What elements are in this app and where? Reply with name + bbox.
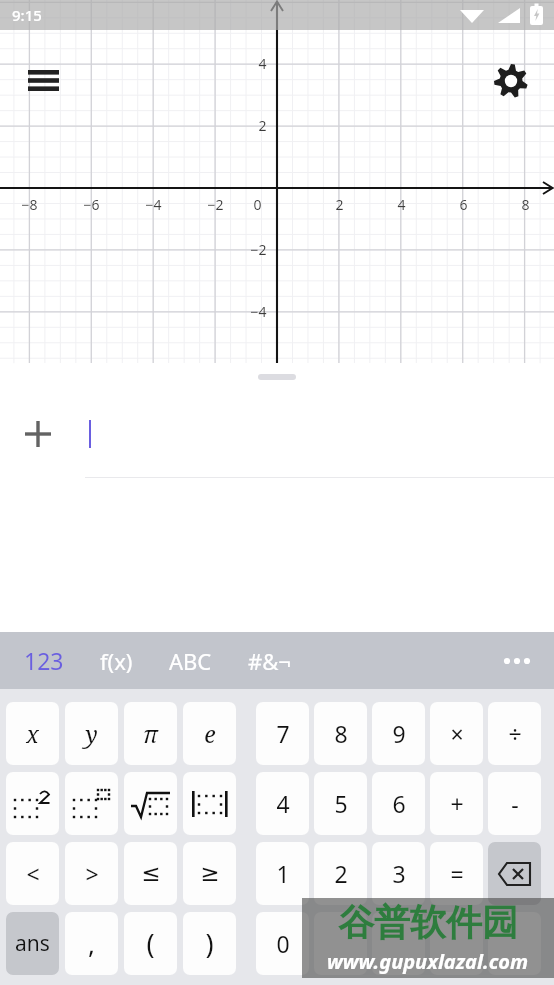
button[interactable]: ≤ bbox=[124, 842, 177, 905]
button[interactable]: ABC bbox=[151, 632, 230, 689]
button[interactable]: Negative bbox=[372, 912, 425, 975]
button[interactable]: 1 bbox=[256, 842, 309, 905]
button[interactable]: < bbox=[6, 842, 59, 905]
staticText: 8 bbox=[521, 195, 530, 214]
staticText: 4 bbox=[276, 788, 290, 819]
staticText: < bbox=[26, 858, 40, 889]
staticText: = bbox=[450, 858, 464, 889]
staticText: 123 bbox=[24, 645, 64, 676]
staticText: 5 bbox=[334, 788, 348, 819]
staticText: ) bbox=[205, 925, 214, 962]
staticText: ABC bbox=[169, 646, 212, 676]
button[interactable]: Square root bbox=[124, 772, 177, 835]
button[interactable]: ) bbox=[183, 912, 236, 975]
staticText: 7 bbox=[276, 718, 290, 749]
staticText: 2 bbox=[334, 858, 348, 889]
staticText: 9 bbox=[392, 718, 406, 749]
button[interactable]: - bbox=[488, 772, 541, 835]
staticText: 谷普软件园 bbox=[338, 900, 518, 945]
staticText: 6 bbox=[459, 195, 468, 214]
button[interactable]: , bbox=[65, 912, 118, 975]
staticText: #&¬ bbox=[248, 646, 291, 676]
button[interactable]: 8 bbox=[314, 702, 367, 765]
staticText: −2 bbox=[250, 240, 267, 259]
staticText: e bbox=[204, 718, 216, 749]
staticText: 6 bbox=[392, 788, 406, 819]
staticText: 2 bbox=[258, 116, 267, 135]
button[interactable]: e bbox=[183, 702, 236, 765]
staticText: x bbox=[26, 718, 39, 749]
button[interactable]: #&¬ bbox=[230, 632, 309, 689]
button[interactable]: x bbox=[6, 702, 59, 765]
staticText: 4 bbox=[258, 54, 267, 73]
button[interactable]: Enter bbox=[488, 912, 541, 975]
button[interactable]: 0 bbox=[256, 912, 309, 975]
staticText: ( bbox=[146, 925, 155, 962]
staticText: −4 bbox=[145, 195, 162, 214]
button[interactable]: 5 bbox=[314, 772, 367, 835]
button[interactable]: ( bbox=[124, 912, 177, 975]
button[interactable]: 9 bbox=[372, 702, 425, 765]
button[interactable]: Add expression bbox=[19, 413, 57, 455]
staticText: × bbox=[450, 718, 464, 749]
button[interactable]: Square bbox=[6, 772, 59, 835]
button[interactable]: Settings bbox=[488, 58, 534, 104]
staticText: - bbox=[511, 788, 519, 819]
button[interactable]: Menu bbox=[20, 59, 66, 101]
staticText: ≤ bbox=[141, 860, 161, 887]
button[interactable]: 4 bbox=[256, 772, 309, 835]
button[interactable]: ÷ bbox=[488, 702, 541, 765]
button[interactable]: Move left bbox=[430, 912, 483, 975]
button[interactable]: Absolute value bbox=[183, 772, 236, 835]
button[interactable]: ≥ bbox=[183, 842, 236, 905]
button[interactable]: π bbox=[124, 702, 177, 765]
staticText: −6 bbox=[83, 195, 100, 214]
button[interactable]: + bbox=[430, 772, 483, 835]
button[interactable]: ans bbox=[6, 912, 59, 975]
button[interactable]: 7 bbox=[256, 702, 309, 765]
staticText: −2 bbox=[207, 195, 224, 214]
staticText: ÷ bbox=[508, 718, 522, 749]
button[interactable]: 2 bbox=[314, 842, 367, 905]
button[interactable]: More options bbox=[494, 641, 540, 681]
staticText: −8 bbox=[21, 195, 38, 214]
button[interactable]: = bbox=[430, 842, 483, 905]
button[interactable]: 3 bbox=[372, 842, 425, 905]
button[interactable]: f(x) bbox=[82, 632, 151, 689]
staticText: 0 bbox=[253, 195, 262, 214]
staticText: www.gupuxlazal.com bbox=[327, 948, 529, 975]
button[interactable]: 123 bbox=[6, 632, 82, 689]
staticText: π bbox=[143, 718, 158, 749]
button[interactable]: × bbox=[430, 702, 483, 765]
staticText: ans bbox=[15, 929, 50, 958]
staticText: 8 bbox=[334, 718, 348, 749]
staticText: 1 bbox=[276, 858, 290, 889]
button[interactable]: > bbox=[65, 842, 118, 905]
staticText: 3 bbox=[392, 858, 406, 889]
staticText: 2 bbox=[335, 195, 344, 214]
staticText: ≥ bbox=[200, 860, 220, 887]
staticText: 0 bbox=[276, 928, 290, 959]
button[interactable]: 6 bbox=[372, 772, 425, 835]
staticText: 4 bbox=[397, 195, 406, 214]
staticText: y bbox=[85, 718, 98, 749]
staticText: + bbox=[450, 788, 464, 819]
button[interactable]: Exponent bbox=[65, 772, 118, 835]
button[interactable]: Backspace bbox=[488, 842, 541, 905]
button[interactable] bbox=[314, 912, 367, 975]
staticText: f(x) bbox=[100, 646, 133, 676]
staticText: , bbox=[88, 926, 95, 961]
staticText: 9:15 bbox=[12, 5, 42, 25]
staticText: > bbox=[85, 858, 99, 889]
button[interactable]: y bbox=[65, 702, 118, 765]
staticText: −4 bbox=[250, 302, 267, 321]
